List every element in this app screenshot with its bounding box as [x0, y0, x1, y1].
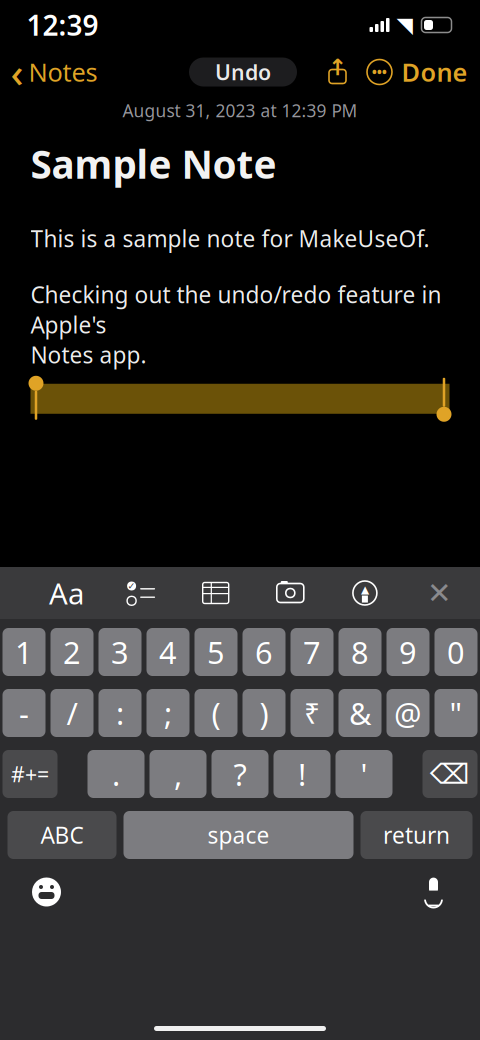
staticText: 1 — [15, 632, 33, 672]
staticText: 4 — [159, 632, 177, 672]
staticText: @ — [394, 693, 422, 733]
staticText: Sample Note — [30, 138, 276, 189]
button[interactable]: 2 — [50, 628, 93, 676]
staticText: Undo — [215, 58, 271, 86]
button[interactable]: ABC — [7, 811, 116, 859]
staticText: : — [116, 693, 124, 733]
button[interactable]: Text format — [44, 572, 88, 614]
staticText: Done — [401, 55, 467, 89]
staticText: ‹ — [10, 45, 23, 98]
staticText: . — [112, 754, 120, 794]
button[interactable]: & — [338, 689, 381, 737]
button[interactable]: Share — [317, 54, 357, 90]
button[interactable]: Checklist — [119, 572, 163, 614]
button[interactable]: Markup — [343, 572, 387, 614]
staticText: ◥ — [396, 13, 412, 37]
button[interactable]: Delete — [422, 750, 477, 798]
button[interactable]: Undo — [189, 57, 297, 86]
button[interactable]: 7 — [290, 628, 333, 676]
button[interactable]: ? — [211, 750, 268, 798]
staticText: 0 — [447, 632, 465, 672]
button[interactable]: @ — [386, 689, 429, 737]
button[interactable]: Table — [194, 572, 238, 614]
button[interactable]: ) — [242, 689, 285, 737]
button[interactable]: return — [360, 811, 472, 859]
staticText: 12:39 — [26, 6, 98, 44]
button[interactable]: 1 — [2, 628, 45, 676]
button[interactable]: space — [123, 811, 353, 859]
staticText: ABC — [40, 820, 83, 850]
button[interactable]: 4 — [146, 628, 189, 676]
button[interactable]: ; — [146, 689, 189, 737]
staticText: This is a sample note for MakeUseOf. — [30, 223, 429, 253]
staticText: & — [349, 693, 371, 733]
staticText: #+= — [11, 760, 49, 788]
staticText: ✕ — [427, 576, 452, 610]
staticText: ) — [259, 693, 268, 733]
button[interactable]: 6 — [242, 628, 285, 676]
staticText: ▲ — [361, 583, 369, 595]
staticText: August 31, 2023 at 12:39 PM — [122, 99, 357, 122]
button[interactable]: / — [50, 689, 93, 737]
staticText: ? — [233, 754, 246, 794]
button[interactable]: 9 — [386, 628, 429, 676]
button[interactable]: Close keyboard — [417, 572, 461, 614]
staticText: return — [383, 820, 450, 850]
button[interactable]: - — [2, 689, 45, 737]
staticText: 3 — [111, 632, 129, 672]
staticText: ₹ — [304, 694, 320, 732]
button[interactable]: , — [149, 750, 206, 798]
button[interactable]: . — [87, 750, 144, 798]
button[interactable]: #+= — [2, 750, 57, 798]
staticText: ↑ — [328, 55, 347, 80]
staticText: / — [66, 693, 77, 733]
button[interactable]: ₹ — [290, 689, 333, 737]
staticText: ' — [360, 754, 367, 794]
staticText: - — [19, 693, 29, 733]
button[interactable]: 5 — [194, 628, 237, 676]
staticText: 5 — [207, 632, 225, 672]
button[interactable]: Emoji — [22, 870, 70, 914]
button[interactable]: ‹ — [0, 39, 97, 104]
staticText: 9 — [399, 632, 417, 672]
button[interactable]: ( — [194, 689, 237, 737]
button[interactable]: 0 — [434, 628, 477, 676]
button[interactable]: 8 — [338, 628, 381, 676]
staticText: 8 — [351, 632, 369, 672]
staticText: Aa — [49, 573, 84, 612]
staticText: 7 — [303, 632, 321, 672]
button[interactable]: 3 — [98, 628, 141, 676]
button[interactable]: ' — [335, 750, 392, 798]
button[interactable]: : — [98, 689, 141, 737]
staticText: , — [174, 754, 182, 794]
button[interactable]: Dictation — [409, 870, 457, 914]
staticText: ⌫ — [430, 758, 470, 790]
staticText: ( — [211, 693, 220, 733]
staticText: Checking out the undo/redo feature in Ap… — [30, 279, 441, 370]
staticText: 2 — [63, 632, 81, 672]
staticText: " — [449, 693, 462, 733]
button[interactable]: Done — [401, 49, 480, 95]
button[interactable]: " — [434, 689, 477, 737]
staticText: Notes — [28, 55, 97, 89]
staticText: ; — [164, 693, 172, 733]
button[interactable]: More — [357, 54, 401, 90]
button[interactable]: Camera — [268, 572, 312, 614]
button[interactable]: ! — [273, 750, 330, 798]
staticText: 6 — [255, 632, 273, 672]
staticText: ! — [298, 754, 306, 794]
staticText: space — [207, 820, 269, 850]
staticText: ••• — [372, 64, 387, 80]
staticText: ✓ — [128, 581, 136, 591]
